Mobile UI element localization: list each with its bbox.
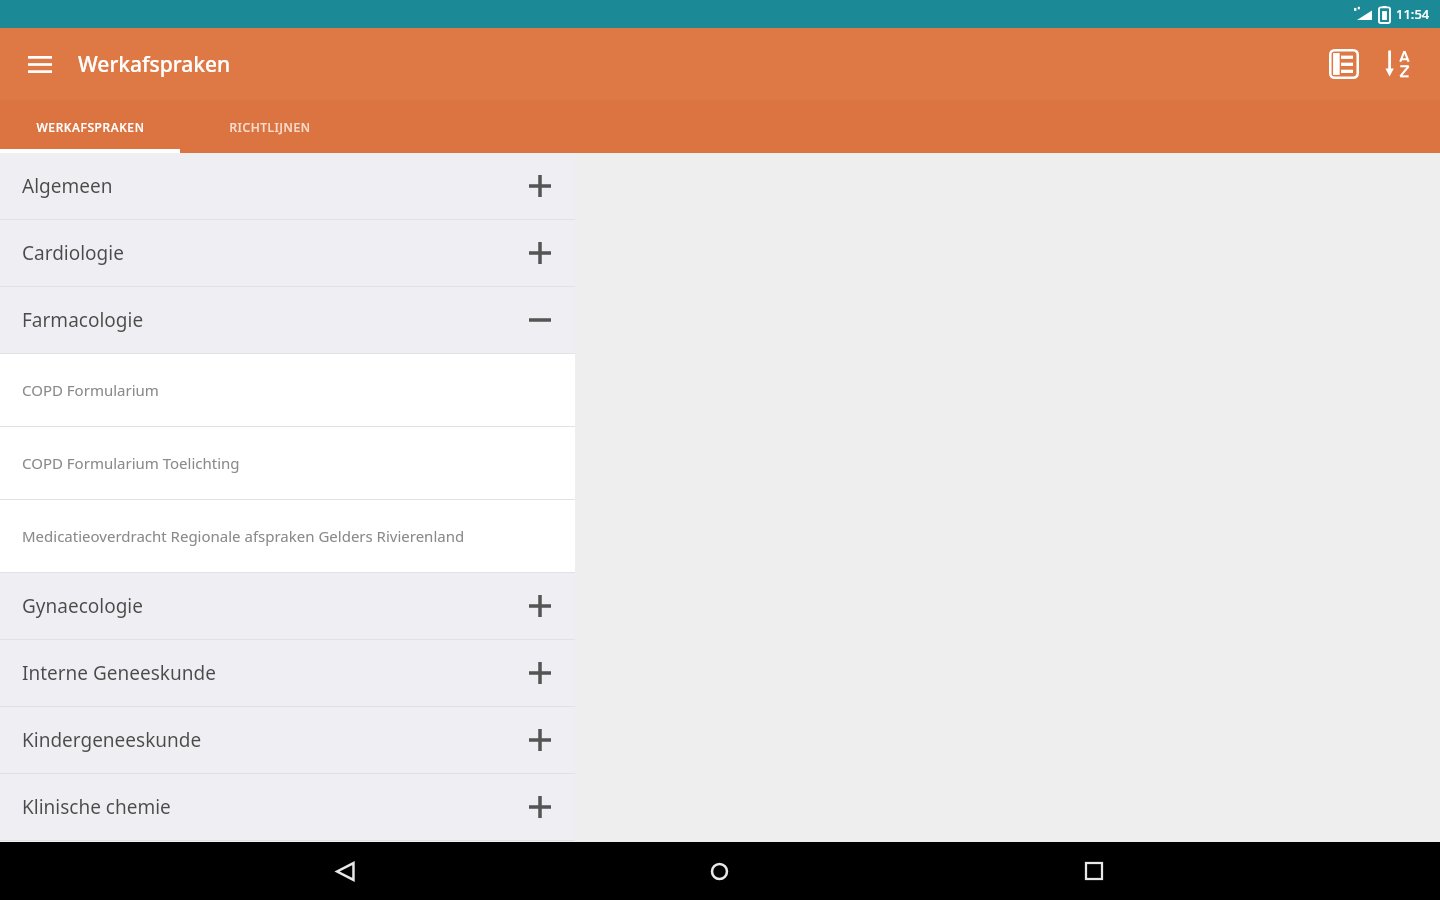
staticText: Algemeen: [22, 173, 113, 199]
button[interactable]: Sort alphabetically: [1374, 40, 1422, 88]
button[interactable]: Gynaecologie: [0, 573, 575, 639]
staticText: Werkafspraken: [78, 50, 231, 79]
staticText: COPD Formularium: [22, 380, 159, 400]
button[interactable]: Home: [690, 842, 748, 900]
staticText: Gynaecologie: [22, 593, 143, 619]
button[interactable]: Open navigation menu: [18, 42, 62, 86]
staticText: Medicatieoverdracht Regionale afspraken …: [22, 526, 465, 546]
staticText: WERKAFSPRAKEN: [36, 119, 145, 135]
staticText: Cardiologie: [22, 240, 124, 266]
button[interactable]: COPD Formularium Toelichting: [0, 427, 575, 499]
button[interactable]: Back: [316, 842, 374, 900]
button[interactable]: Cardiologie: [0, 220, 575, 286]
button[interactable]: Algemeen: [0, 153, 575, 219]
staticText: 11:54: [1396, 5, 1430, 23]
button[interactable]: RICHTLIJNEN: [180, 100, 360, 153]
staticText: COPD Formularium Toelichting: [22, 453, 240, 473]
staticText: Farmacologie: [22, 307, 144, 333]
button[interactable]: COPD Formularium: [0, 354, 575, 426]
staticText: Kindergeneeskunde: [22, 727, 202, 753]
button[interactable]: Kindergeneeskunde: [0, 707, 575, 773]
staticText: Klinische chemie: [22, 794, 171, 820]
button[interactable]: WERKAFSPRAKEN: [0, 100, 180, 153]
staticText: Interne Geneeskunde: [22, 660, 216, 686]
staticText: RICHTLIJNEN: [229, 119, 311, 135]
button[interactable]: Change view: [1320, 40, 1368, 88]
button[interactable]: Farmacologie: [0, 287, 575, 353]
button[interactable]: Klinische chemie: [0, 774, 575, 840]
button[interactable]: Medicatieoverdracht Regionale afspraken …: [0, 500, 575, 572]
button[interactable]: Recent apps: [1065, 842, 1123, 900]
button[interactable]: Interne Geneeskunde: [0, 640, 575, 706]
